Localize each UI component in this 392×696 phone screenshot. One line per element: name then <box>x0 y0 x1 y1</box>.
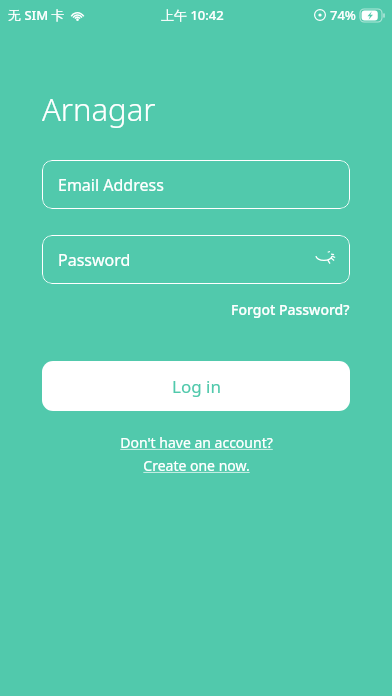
staticText: Password <box>58 249 131 271</box>
staticText: Create one now. <box>143 456 250 475</box>
staticText: Don't have an account? <box>120 433 273 452</box>
staticText: 74% <box>330 6 356 24</box>
staticText: Forgot Password? <box>231 300 350 319</box>
staticText: 无 SIM 卡 <box>8 6 65 24</box>
button[interactable]: Forgot Password? <box>231 296 350 323</box>
button[interactable]: Log in <box>42 361 350 411</box>
button[interactable]: Don't have an account? <box>0 433 392 475</box>
button[interactable]: Show password <box>310 246 338 274</box>
button[interactable]: Password <box>42 235 350 284</box>
staticText: Log in <box>172 375 221 398</box>
staticText: 上午 10:42 <box>161 6 224 24</box>
staticText: Email Address <box>58 174 164 196</box>
staticText: Arnagar <box>42 88 156 130</box>
button[interactable]: Email Address <box>42 160 350 209</box>
